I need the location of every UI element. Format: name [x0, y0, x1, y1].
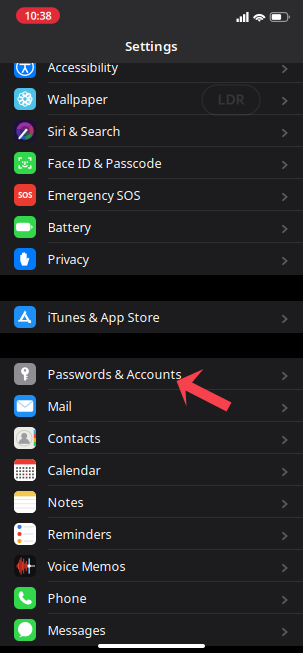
staticText: Wallpaper — [47, 90, 107, 108]
button[interactable]: Siri & Search — [0, 115, 303, 147]
button[interactable]: SOS — [0, 179, 303, 211]
staticText: Emergency SOS — [47, 186, 140, 204]
button[interactable]: Notes — [0, 486, 303, 518]
staticText: Battery — [47, 218, 90, 236]
button[interactable]: iTunes & App Store — [0, 301, 303, 333]
staticText: Privacy — [47, 250, 88, 268]
staticText: iTunes & App Store — [47, 308, 159, 326]
staticText: Siri & Search — [47, 122, 120, 140]
button[interactable]: Passwords & Accounts — [0, 358, 303, 390]
button[interactable]: Calendar — [0, 454, 303, 486]
staticText: Face ID & Passcode — [47, 154, 161, 172]
button[interactable]: Mail — [0, 390, 303, 422]
staticText: Passwords & Accounts — [47, 365, 181, 383]
staticText: Settings — [125, 37, 178, 55]
staticText: Voice Memos — [47, 557, 125, 575]
staticText: Calendar — [47, 461, 100, 479]
staticText: Phone — [47, 589, 86, 607]
button[interactable]: Privacy — [0, 243, 303, 275]
staticText: SOS — [18, 190, 32, 200]
button[interactable]: Messages — [0, 614, 303, 646]
staticText: 10:38 — [24, 8, 51, 23]
button[interactable]: Voice Memos — [0, 550, 303, 582]
staticText: Notes — [47, 493, 83, 511]
button[interactable]: Contacts — [0, 422, 303, 454]
staticText: Accessibility — [47, 58, 117, 76]
button[interactable]: Face ID & Passcode — [0, 147, 303, 179]
button[interactable]: Battery — [0, 211, 303, 243]
staticText: Mail — [47, 397, 71, 415]
button[interactable]: Accessibility — [0, 51, 303, 83]
button[interactable]: Reminders — [0, 518, 303, 550]
button[interactable]: Phone — [0, 582, 303, 614]
staticText: Contacts — [47, 429, 100, 447]
button[interactable]: Wallpaper — [0, 83, 303, 115]
staticText: Reminders — [47, 525, 111, 543]
staticText: LDR — [217, 89, 244, 109]
staticText: Messages — [47, 621, 105, 639]
